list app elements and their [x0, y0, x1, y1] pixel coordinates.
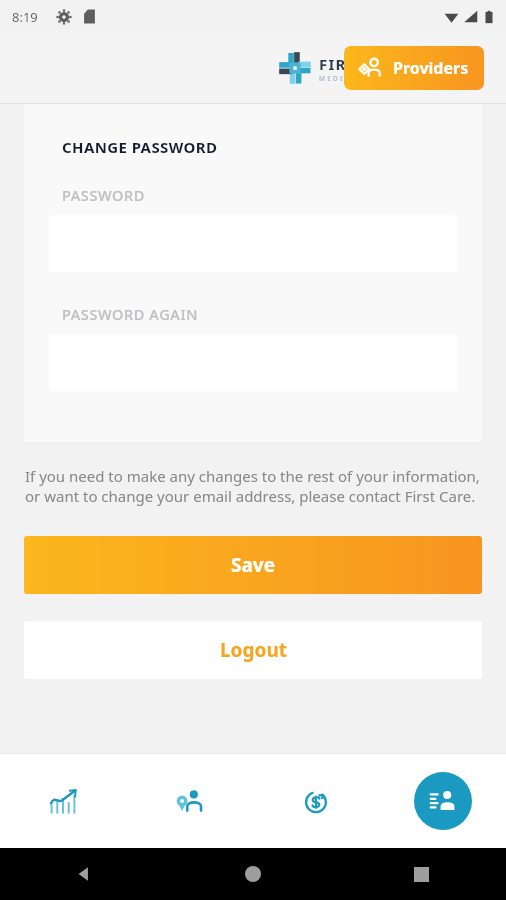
button[interactable]: Profile — [414, 772, 472, 830]
button[interactable]: Home — [168, 866, 337, 882]
button[interactable]: Payments — [252, 753, 379, 848]
button[interactable]: Back — [0, 865, 168, 883]
staticText: Providers — [393, 57, 469, 79]
staticText: MEDICAL PLAN — [319, 74, 393, 83]
staticText: Logout — [220, 637, 287, 663]
button[interactable]: Claims — [0, 753, 126, 848]
button[interactable]: Providers — [126, 753, 252, 848]
staticText: PASSWORD — [62, 185, 145, 205]
staticText: CHANGE PASSWORD — [62, 137, 218, 157]
button[interactable]: Providers — [344, 46, 484, 90]
staticText: If you need to make any changes to the r… — [25, 466, 481, 506]
staticText: PASSWORD AGAIN — [62, 304, 198, 324]
staticText: FIRSTCARE — [319, 54, 409, 74]
button[interactable]: Save — [24, 536, 482, 594]
button[interactable]: Logout — [24, 621, 482, 679]
staticText: Save — [231, 552, 276, 578]
staticText: 8:19 — [12, 8, 38, 26]
button[interactable]: Recent apps — [337, 867, 506, 882]
